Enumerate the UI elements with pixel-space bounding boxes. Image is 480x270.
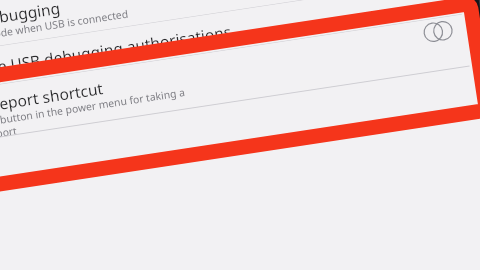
button[interactable]: Developer options screenshot bbox=[0, 0, 480, 270]
